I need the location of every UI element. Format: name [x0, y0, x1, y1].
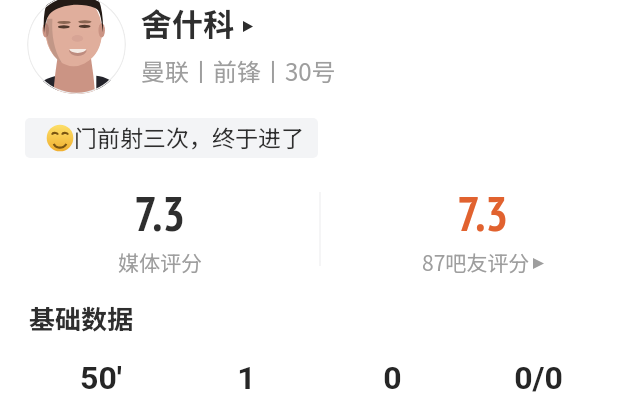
staticText: 舍什科 — [141, 0, 234, 45]
button[interactable]: 0 — [319, 359, 465, 397]
staticText: 7.3 — [134, 182, 186, 244]
staticText: 门前射三次，终于进了 — [74, 120, 304, 153]
button[interactable]: 舍什科 — [141, 0, 253, 45]
staticText: 7.3 — [457, 182, 509, 244]
button[interactable]: 1 — [173, 359, 319, 397]
staticText: 1 — [237, 359, 256, 397]
staticText: 曼联丨前锋丨30号 — [141, 53, 336, 88]
staticText: 媒体评分 — [118, 247, 202, 277]
staticText: 50' — [80, 359, 122, 397]
button[interactable]: 球员头像 — [27, 0, 126, 94]
staticText: 基础数据 — [29, 299, 134, 337]
staticText: 0/0 — [514, 359, 563, 397]
button[interactable]: 7.3 — [323, 182, 640, 277]
staticText: 0 — [383, 359, 402, 397]
button[interactable]: 50' — [28, 359, 173, 397]
button[interactable]: 7.3 — [0, 182, 320, 277]
staticText: 87吧友评分 — [422, 247, 530, 277]
button[interactable]: 门前射三次，终于进了 — [25, 118, 318, 158]
button[interactable]: 0/0 — [465, 359, 611, 397]
